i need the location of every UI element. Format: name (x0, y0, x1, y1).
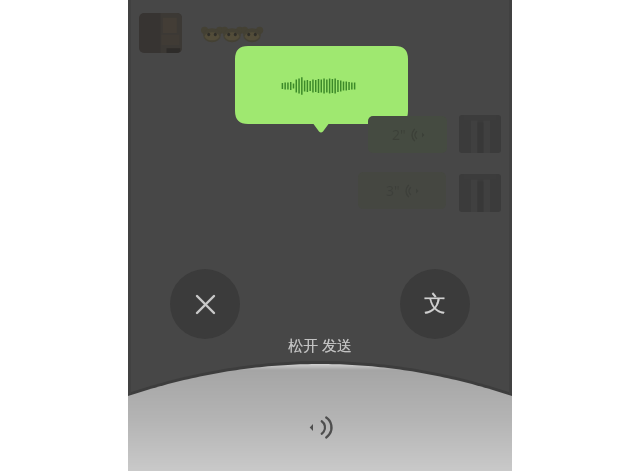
button[interactable]: Cancel recording (170, 269, 240, 339)
button[interactable]: Avatar (139, 13, 182, 53)
staticText: 松开 发送 (288, 335, 352, 355)
button[interactable]: 2" (368, 116, 447, 153)
button[interactable]: 文 (400, 269, 470, 339)
staticText: 文 (424, 290, 446, 318)
button[interactable]: Speaker (302, 411, 334, 443)
